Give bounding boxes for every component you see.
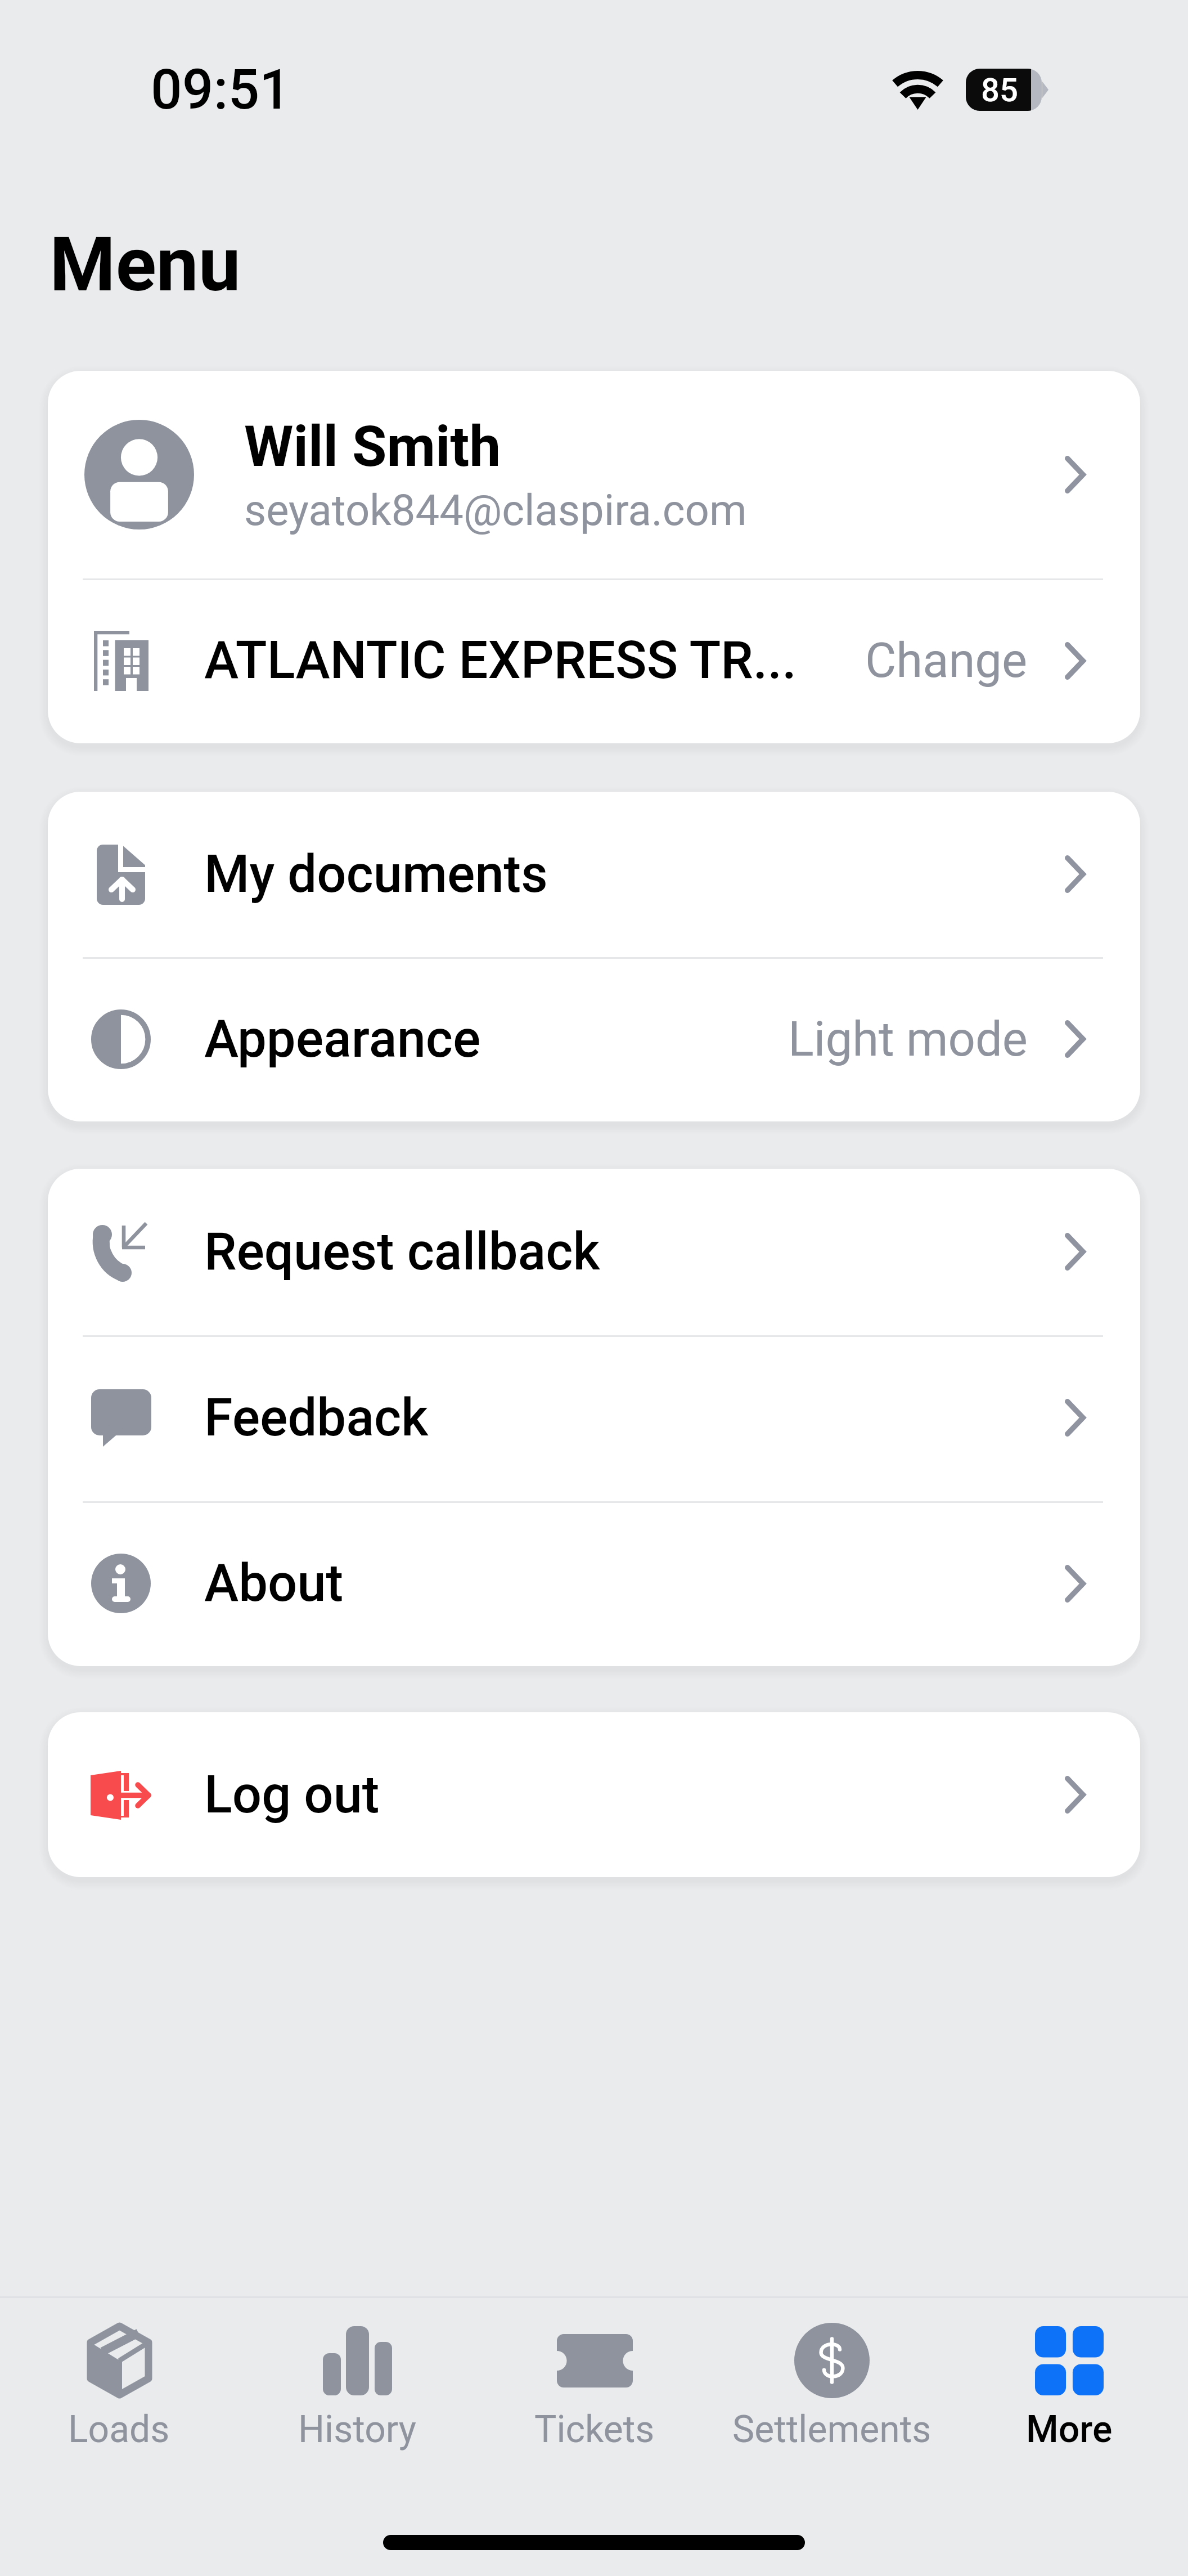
- button[interactable]: Will Smith, account settings: [48, 371, 1140, 578]
- button[interactable]: ATLANTIC EXPRESS TR...: [48, 578, 1140, 743]
- button[interactable]: About: [48, 1501, 1140, 1666]
- staticText: More: [1026, 2408, 1113, 2451]
- button[interactable]: Loads: [0, 2298, 238, 2498]
- staticText: My documents: [204, 844, 1065, 905]
- staticText: Light mode: [788, 1011, 1028, 1067]
- staticText: Change: [865, 632, 1028, 689]
- staticText: History: [298, 2408, 416, 2451]
- button[interactable]: History: [238, 2298, 476, 2498]
- staticText: Will Smith: [244, 414, 501, 479]
- button[interactable]: My documents: [48, 792, 1140, 957]
- staticText: Loads: [68, 2408, 170, 2451]
- button[interactable]: More: [951, 2298, 1188, 2498]
- staticText: ATLANTIC EXPRESS TR...: [204, 630, 865, 691]
- staticText: 85: [981, 71, 1018, 109]
- button[interactable]: Settlements: [713, 2298, 951, 2498]
- button[interactable]: Tickets: [476, 2298, 713, 2498]
- button[interactable]: Log out: [48, 1712, 1140, 1877]
- staticText: 09:51: [151, 57, 291, 122]
- staticText: Log out: [204, 1765, 1065, 1825]
- staticText: Tickets: [534, 2408, 655, 2451]
- staticText: Settlements: [732, 2408, 931, 2451]
- staticText: seyatok844@claspira.com: [244, 485, 747, 535]
- staticText: Feedback: [204, 1388, 1065, 1448]
- staticText: Appearance: [204, 1009, 788, 1070]
- button[interactable]: Feedback: [48, 1335, 1140, 1501]
- staticText: Menu: [49, 221, 241, 309]
- button[interactable]: Appearance: [48, 957, 1140, 1121]
- staticText: About: [204, 1553, 1065, 1614]
- staticText: Request callback: [204, 1222, 1065, 1282]
- button[interactable]: Request callback: [48, 1169, 1140, 1335]
